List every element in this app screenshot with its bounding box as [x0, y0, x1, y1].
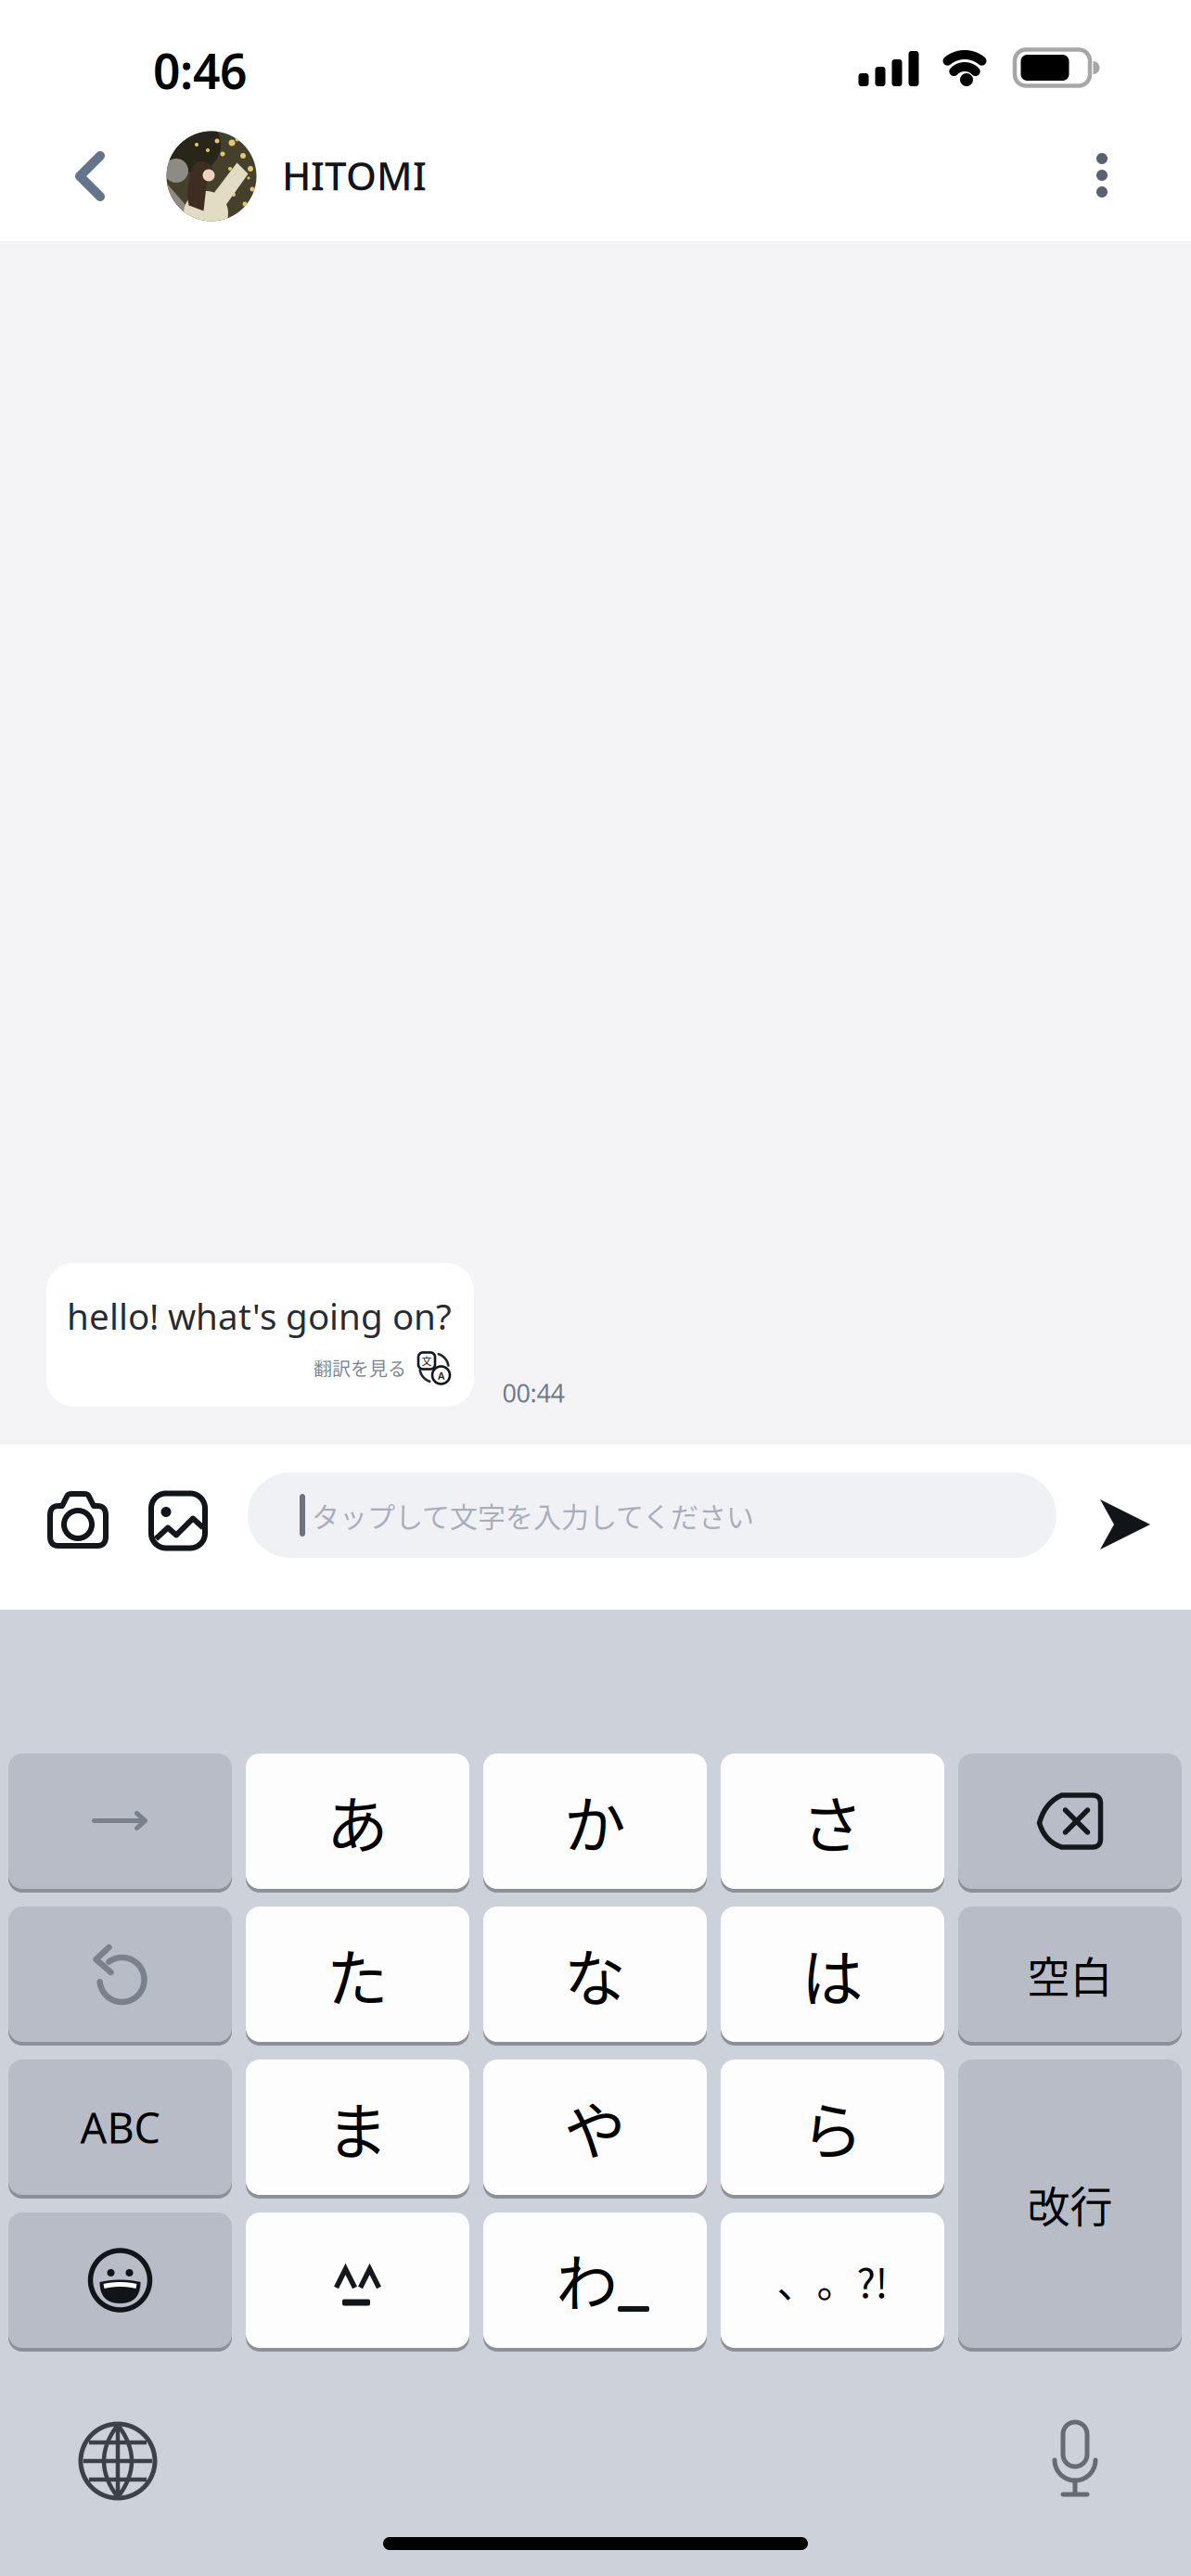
staticText: ま	[327, 2083, 389, 2172]
button[interactable]: は	[721, 1906, 944, 2042]
staticText: あ	[327, 1777, 389, 1866]
staticText: や	[564, 2083, 626, 2172]
staticText: HITOMI	[282, 149, 427, 202]
button[interactable]: Message field	[248, 1473, 1057, 1558]
button[interactable]: Undo	[8, 1906, 232, 2042]
button[interactable]: さ	[721, 1753, 944, 1889]
button[interactable]: あ	[246, 1753, 469, 1889]
staticText: か	[564, 1777, 626, 1866]
button[interactable]: 、。?!	[721, 2213, 944, 2348]
button[interactable]: な	[483, 1906, 707, 2042]
button[interactable]: わ	[483, 2213, 707, 2348]
staticText: さ	[801, 1777, 864, 1866]
staticText: 文	[422, 1353, 432, 1368]
button[interactable]: Dictate	[1050, 2420, 1100, 2498]
staticText: 改行	[1027, 2173, 1113, 2235]
button[interactable]: More options	[1079, 143, 1125, 208]
button[interactable]: Emoji	[8, 2213, 232, 2348]
button[interactable]: Next keyboard	[81, 2424, 155, 2498]
staticText: ABC	[80, 2099, 160, 2156]
staticText: た	[327, 1930, 389, 2019]
staticText: hello! what's going on?	[67, 1292, 452, 1340]
staticText: 、。?!	[777, 2251, 888, 2309]
staticText: 空白	[1027, 1943, 1113, 2005]
button[interactable]: た	[246, 1906, 469, 2042]
button[interactable]: Profile	[166, 131, 256, 221]
button[interactable]: か	[483, 1753, 707, 1889]
staticText: A	[438, 1369, 444, 1383]
staticText: わ	[556, 2235, 618, 2324]
button[interactable]: Delete	[958, 1753, 1182, 1889]
button[interactable]: Move cursor	[8, 1753, 232, 1889]
staticText: 0:46	[153, 38, 247, 103]
button[interactable]: や	[483, 2060, 707, 2195]
button[interactable]: Back	[64, 148, 116, 204]
button[interactable]: ら	[721, 2060, 944, 2195]
button[interactable]: 翻訳を見る	[314, 1352, 451, 1384]
button[interactable]: Kaomoji	[246, 2213, 469, 2348]
staticText: 00:44	[502, 1376, 564, 1410]
button[interactable]: 空白	[958, 1906, 1182, 2042]
staticText: 翻訳を見る	[314, 1354, 406, 1381]
button[interactable]: Send	[1100, 1499, 1150, 1549]
button[interactable]: Camera	[47, 1493, 109, 1547]
button[interactable]: Photos	[151, 1493, 205, 1548]
staticText: な	[564, 1930, 626, 2019]
button[interactable]: ABC	[8, 2060, 232, 2195]
staticText: は	[801, 1930, 864, 2019]
button[interactable]: ま	[246, 2060, 469, 2195]
button[interactable]: 改行	[958, 2060, 1182, 2348]
staticText: ら	[801, 2083, 864, 2172]
staticText: タップして文字を入力してください	[312, 1495, 754, 1535]
